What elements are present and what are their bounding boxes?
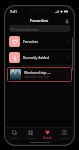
staticText: Weekend trip — Lakeside	[24, 70, 66, 75]
staticText: Profile	[61, 136, 69, 139]
button[interactable]: Favorites	[6, 34, 73, 49]
staticText: Recently Added	[23, 55, 49, 60]
button[interactable]: Search families	[9, 25, 70, 32]
staticText: Albums	[26, 136, 35, 139]
staticText: Favorites	[23, 39, 39, 44]
staticText: Updated 2 days ago	[24, 75, 50, 79]
staticText: Search families	[15, 27, 39, 31]
staticText: 9:41	[10, 9, 17, 14]
staticText: Favorites	[30, 18, 49, 24]
button[interactable]: Albums	[22, 128, 39, 141]
button[interactable]: Profile	[56, 128, 73, 141]
button[interactable]: More options	[63, 17, 70, 24]
button[interactable]: Weekend trip — Lakeside	[7, 67, 72, 82]
staticText: Shared	[43, 136, 52, 139]
button[interactable]: Shared	[39, 128, 56, 141]
button[interactable]: Recently Added	[6, 50, 73, 65]
staticText: Library	[10, 136, 19, 139]
button[interactable]: Library	[6, 128, 22, 141]
